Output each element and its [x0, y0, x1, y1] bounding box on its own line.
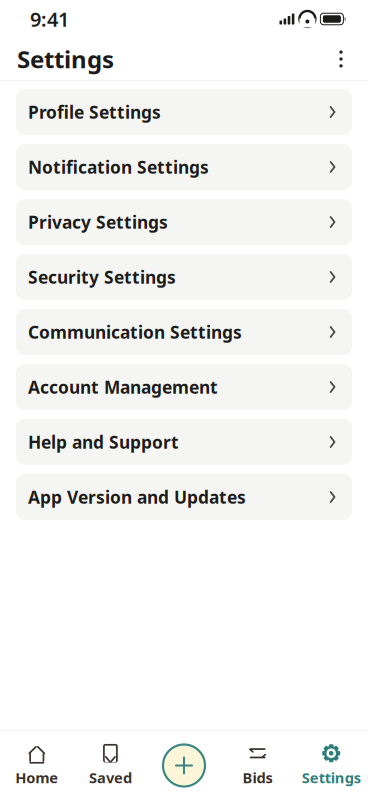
button[interactable]: More options	[323, 39, 359, 79]
button[interactable]: Settings	[294, 731, 368, 800]
staticText: Security Settings	[28, 265, 176, 288]
button[interactable]: Notification Settings	[16, 144, 352, 190]
button[interactable]: Home	[0, 731, 74, 800]
button[interactable]: Communication Settings	[16, 309, 352, 355]
staticText: Privacy Settings	[28, 210, 168, 233]
button[interactable]: App Version and Updates	[16, 474, 352, 520]
staticText: Saved	[89, 768, 132, 787]
staticText: Bids	[243, 768, 273, 787]
button[interactable]: Help and Support	[16, 419, 352, 465]
button[interactable]: Profile Settings	[16, 89, 352, 135]
button[interactable]: Saved	[74, 731, 147, 800]
button[interactable]: Privacy Settings	[16, 199, 352, 245]
button[interactable]: Security Settings	[16, 254, 352, 300]
staticText: Home	[15, 768, 58, 787]
staticText: Communication Settings	[28, 320, 242, 343]
staticText: Settings	[302, 768, 361, 787]
staticText: Notification Settings	[28, 155, 209, 178]
button[interactable]: Create new	[147, 731, 221, 800]
staticText: Help and Support	[28, 430, 179, 453]
staticText: Settings	[17, 43, 114, 75]
staticText: Account Management	[28, 375, 218, 398]
staticText: 9:41	[30, 6, 69, 32]
button[interactable]: Account Management	[16, 364, 352, 410]
button[interactable]: Bids	[221, 731, 294, 800]
staticText: App Version and Updates	[28, 485, 246, 508]
staticText: Profile Settings	[28, 100, 161, 123]
